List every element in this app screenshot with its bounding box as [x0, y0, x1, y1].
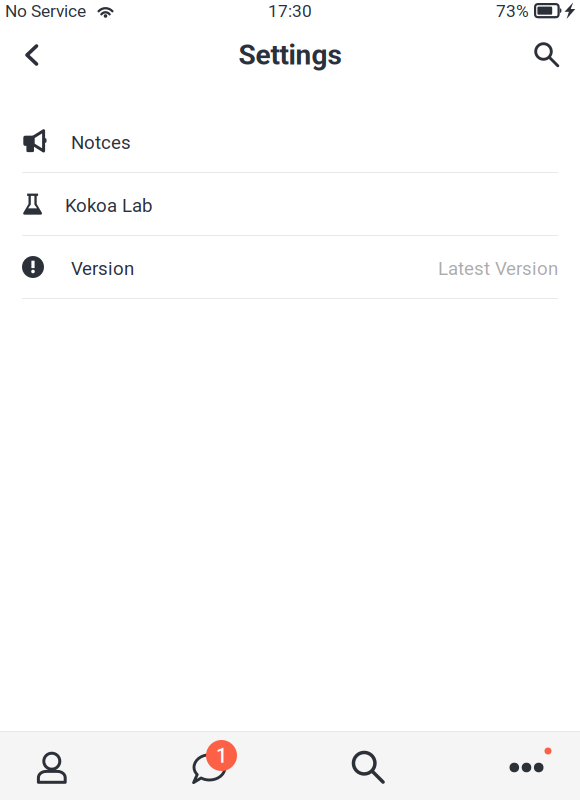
- button[interactable]: Kokoa Lab: [0, 173, 580, 236]
- button[interactable]: More: [504, 745, 550, 786]
- button[interactable]: Notces: [0, 110, 580, 173]
- staticText: Latest Version: [438, 258, 558, 279]
- staticText: No Service: [5, 1, 86, 21]
- button[interactable]: Search: [352, 748, 385, 784]
- staticText: 17:30: [268, 1, 312, 21]
- button[interactable]: Version: [0, 236, 580, 299]
- button[interactable]: Chats: [181, 740, 237, 792]
- staticText: Settings: [238, 39, 341, 71]
- staticText: Notces: [71, 132, 131, 153]
- button[interactable]: Profile: [36, 748, 67, 784]
- button[interactable]: Back: [10, 33, 54, 77]
- staticText: 73%: [496, 1, 529, 21]
- staticText: Kokoa Lab: [65, 195, 152, 216]
- staticText: 1: [216, 744, 227, 768]
- button[interactable]: Search: [525, 33, 569, 77]
- staticText: Version: [71, 258, 134, 279]
